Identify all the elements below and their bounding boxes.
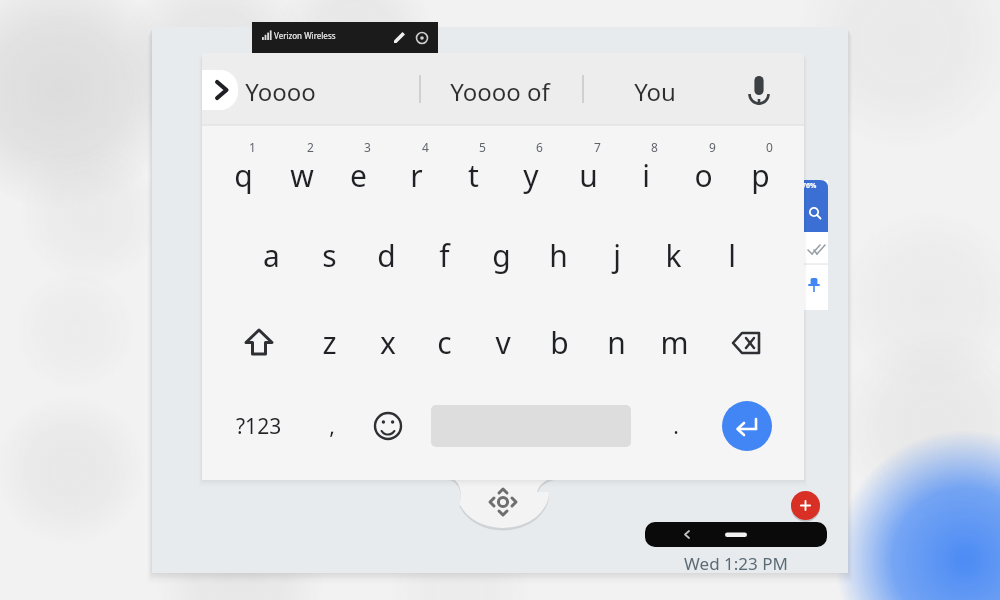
staticText: ?123 — [236, 412, 282, 441]
button[interactable]: g — [473, 226, 530, 284]
button[interactable]: f — [416, 226, 473, 284]
button[interactable]: 6 — [502, 139, 559, 197]
button[interactable]: 0 — [732, 139, 789, 197]
staticText: 9 — [709, 139, 716, 155]
staticText: m — [660, 322, 689, 363]
button[interactable]: 5 — [445, 139, 502, 197]
staticText: y — [523, 155, 539, 196]
staticText: , — [329, 412, 335, 441]
staticText: o — [694, 155, 713, 196]
button[interactable]: z — [301, 313, 358, 371]
button[interactable]: 4 — [388, 139, 445, 197]
button[interactable]: Add — [791, 491, 820, 520]
button[interactable]: Home — [705, 522, 767, 547]
staticText: r — [410, 155, 423, 196]
button[interactable]: , — [303, 397, 360, 455]
button[interactable]: m — [646, 313, 703, 371]
button[interactable]: v — [474, 313, 531, 371]
staticText: 0 — [766, 139, 773, 155]
staticText: Wed 1:23 PM — [684, 552, 788, 575]
button[interactable]: 2 — [273, 139, 330, 197]
button[interactable]: ?123 — [226, 398, 292, 454]
button[interactable]: 8 — [617, 139, 674, 197]
button[interactable]: Voice input — [733, 64, 787, 118]
button[interactable]: Expand suggestions — [202, 70, 238, 110]
staticText: e — [350, 155, 367, 196]
button[interactable]: k — [645, 226, 702, 284]
staticText: 2 — [307, 139, 314, 155]
staticText: s — [322, 235, 337, 276]
staticText: 3 — [364, 139, 371, 155]
button[interactable]: Backspace — [718, 314, 776, 372]
staticText: 7 — [594, 139, 601, 155]
button[interactable]: n — [588, 313, 645, 371]
staticText: 5 — [479, 139, 486, 155]
staticText: u — [579, 155, 598, 196]
staticText: n — [607, 322, 626, 363]
staticText: 8 — [651, 139, 658, 155]
staticText: x — [380, 322, 396, 363]
staticText: p — [751, 155, 770, 196]
button[interactable]: h — [530, 226, 587, 284]
button[interactable]: Emoji — [360, 398, 416, 454]
staticText: b — [550, 322, 569, 363]
staticText: Verizon Wireless — [274, 30, 336, 41]
staticText: 1 — [249, 139, 256, 155]
staticText: l — [728, 235, 736, 276]
button[interactable]: Enter — [722, 401, 772, 451]
staticText: Yoooo of — [450, 75, 550, 108]
staticText: g — [492, 235, 511, 276]
button[interactable]: x — [359, 313, 416, 371]
staticText: v — [495, 322, 511, 363]
button[interactable]: s — [301, 226, 358, 284]
staticText: You — [634, 75, 676, 108]
button[interactable]: . — [647, 397, 704, 455]
staticText: w — [290, 155, 314, 196]
button[interactable]: 7 — [560, 139, 617, 197]
button[interactable]: j — [588, 226, 645, 284]
button[interactable]: 1 — [215, 139, 272, 197]
staticText: Yoooo — [245, 75, 316, 108]
staticText: j — [613, 235, 621, 276]
staticText: d — [377, 235, 396, 276]
button[interactable]: c — [416, 313, 473, 371]
button[interactable]: Yoooo — [210, 65, 350, 117]
staticText: a — [263, 235, 280, 276]
staticText: t — [468, 155, 479, 196]
staticText: c — [437, 322, 452, 363]
button[interactable]: Yoooo of — [430, 65, 570, 117]
button[interactable]: l — [703, 226, 760, 284]
staticText: 76% — [802, 181, 817, 191]
button[interactable]: You — [585, 65, 725, 117]
staticText: z — [322, 322, 337, 363]
button[interactable]: Back — [645, 522, 705, 547]
button[interactable]: b — [531, 313, 588, 371]
staticText: 4 — [422, 139, 429, 155]
staticText: f — [439, 235, 450, 276]
button[interactable]: a — [243, 226, 300, 284]
staticText: . — [673, 412, 679, 441]
staticText: h — [549, 235, 568, 276]
staticText: k — [665, 235, 682, 276]
staticText: i — [642, 155, 650, 196]
staticText: 6 — [536, 139, 543, 155]
button[interactable]: d — [358, 226, 415, 284]
button[interactable]: Shift — [230, 314, 288, 372]
button[interactable]: 9 — [675, 139, 732, 197]
button[interactable]: 3 — [330, 139, 387, 197]
staticText: q — [234, 155, 253, 196]
